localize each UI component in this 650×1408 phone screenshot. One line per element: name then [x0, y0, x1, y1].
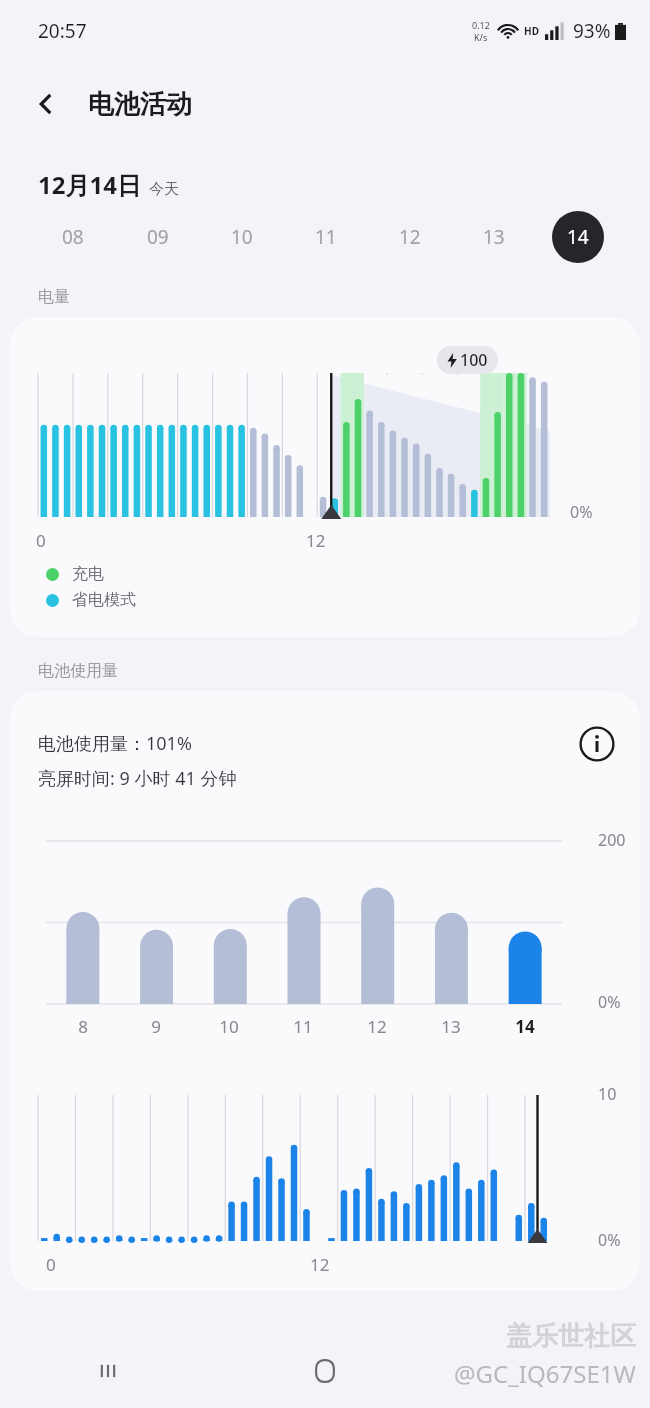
staticText: 0%: [598, 991, 621, 1013]
staticText: 9: [151, 1015, 161, 1038]
staticText: 8: [78, 1015, 88, 1038]
staticText: 电池活动: [88, 88, 192, 121]
button[interactable]: 11: [284, 201, 368, 273]
staticText: 电池使用量: [38, 661, 118, 681]
staticText: 13: [441, 1015, 461, 1038]
staticText: 10: [598, 1083, 617, 1105]
staticText: @GC_IQ67SE1W: [454, 1357, 636, 1390]
button[interactable]: 10: [200, 201, 284, 273]
staticText: 充电: [72, 564, 104, 584]
button[interactable]: 13: [452, 201, 536, 273]
staticText: 0.12: [472, 19, 490, 31]
staticText: 12: [306, 529, 326, 552]
button[interactable]: 电池使用量：101%: [10, 691, 640, 1291]
staticText: 亮屏时间: 9 小时 41 分钟: [38, 766, 237, 791]
staticText: 11: [315, 224, 337, 250]
staticText: HD: [524, 24, 539, 38]
button[interactable]: Recent apps: [0, 1334, 216, 1408]
staticText: 电量: [38, 287, 70, 307]
staticText: 11: [293, 1015, 313, 1038]
button[interactable]: 14: [536, 201, 620, 273]
staticText: 0: [46, 1253, 56, 1276]
staticText: 14: [567, 224, 589, 250]
button[interactable]: Home: [216, 1334, 433, 1408]
button[interactable]: 09: [115, 201, 200, 273]
button[interactable]: 12: [368, 201, 452, 273]
staticText: 08: [62, 224, 84, 250]
staticText: 100: [460, 349, 488, 371]
staticText: 12: [399, 224, 421, 250]
staticText: 93%: [573, 18, 611, 44]
staticText: 12: [367, 1015, 387, 1038]
staticText: 10: [219, 1015, 239, 1038]
staticText: 13: [483, 224, 505, 250]
button[interactable]: Back: [24, 82, 68, 126]
button[interactable]: 0%: [10, 317, 640, 637]
staticText: 09: [147, 224, 169, 250]
staticText: 今天: [149, 180, 179, 199]
staticText: 0%: [570, 501, 593, 523]
staticText: 20:57: [38, 18, 87, 44]
staticText: 盖乐世社区: [506, 1320, 636, 1353]
staticText: K/s: [474, 31, 488, 43]
button[interactable]: 08: [30, 201, 115, 273]
staticText: 电池使用量：101%: [38, 731, 192, 756]
staticText: 12: [310, 1253, 330, 1276]
button[interactable]: Information: [576, 723, 618, 765]
staticText: 12月14日: [38, 168, 141, 201]
staticText: 0%: [598, 1229, 621, 1251]
staticText: 0: [36, 529, 46, 552]
staticText: 200: [598, 829, 626, 851]
staticText: 省电模式: [72, 590, 136, 610]
staticText: 14: [515, 1015, 535, 1038]
staticText: 10: [231, 224, 253, 250]
